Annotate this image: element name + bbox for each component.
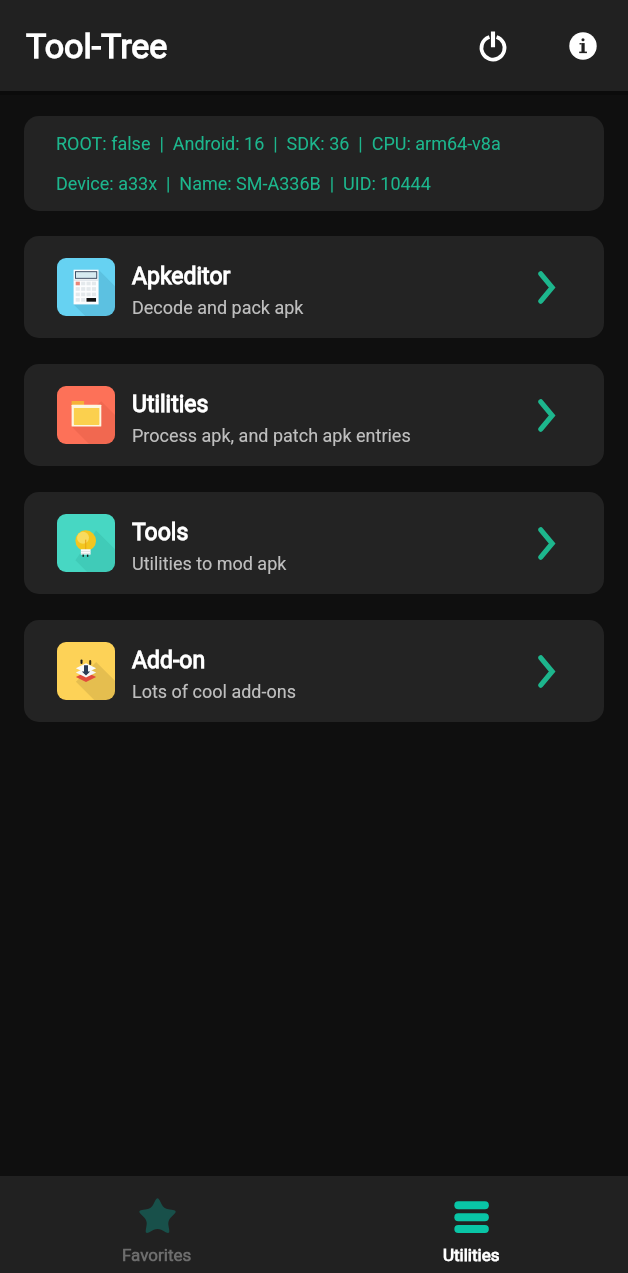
staticText: Utilities	[443, 1245, 500, 1265]
button[interactable]: Utilities	[24, 364, 604, 466]
button[interactable]: Info	[559, 22, 607, 70]
button[interactable]: Add-on	[24, 620, 604, 722]
staticText: Utilities to mod apk	[132, 553, 287, 574]
button[interactable]: Tools	[24, 492, 604, 594]
staticText: Decode and pack apk	[132, 297, 304, 318]
staticText: Tool-Tree	[26, 26, 168, 66]
button[interactable]: Power	[469, 22, 517, 70]
staticText: Tools	[132, 519, 189, 546]
button[interactable]: Apkeditor	[24, 236, 604, 338]
staticText: Apkeditor	[132, 263, 231, 290]
staticText: Utilities	[132, 391, 209, 418]
staticText: ROOT: false | Android: 16 | SDK: 36 | CP…	[56, 133, 501, 154]
staticText: Lots of cool add-ons	[132, 681, 296, 702]
staticText: Process apk, and patch apk entries	[132, 425, 411, 446]
button[interactable]: Utilities	[314, 1176, 628, 1273]
staticText: Favorites	[122, 1245, 192, 1265]
staticText: Device: a33x | Name: SM-A336B | UID: 104…	[56, 173, 431, 194]
button[interactable]: Favorites	[0, 1176, 314, 1273]
button[interactable]: ROOT: false | Android: 16 | SDK: 36 | CP…	[24, 116, 604, 211]
staticText: Add-on	[132, 647, 206, 674]
